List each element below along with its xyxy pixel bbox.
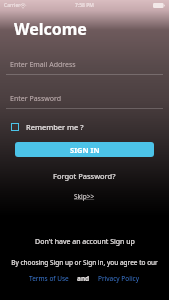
staticText: 7:58 PM xyxy=(75,2,94,9)
button[interactable]: Remember me ? xyxy=(8,120,87,134)
staticText: Enter Email Address xyxy=(10,60,76,70)
button[interactable]: Skip>> xyxy=(70,190,99,203)
button[interactable]: SIGN IN xyxy=(15,142,154,157)
staticText: Remember me ? xyxy=(26,122,84,132)
staticText: Welcome xyxy=(14,18,87,40)
staticText: and xyxy=(77,274,90,283)
button[interactable]: Forgot Password? xyxy=(49,169,120,183)
staticText: SIGN IN xyxy=(70,145,100,155)
button[interactable]: Enter Email Address xyxy=(10,56,159,74)
staticText: Enter Password xyxy=(10,94,62,104)
button[interactable]: Enter Password xyxy=(10,90,159,108)
staticText: By choosing Sign up or Sign in, you agre… xyxy=(11,258,158,267)
button[interactable]: Don't have an account Sign up xyxy=(31,235,139,249)
staticText: Carrier xyxy=(4,2,21,9)
button[interactable]: Privacy Policy xyxy=(96,273,142,284)
button[interactable]: Terms of Use xyxy=(27,273,71,284)
